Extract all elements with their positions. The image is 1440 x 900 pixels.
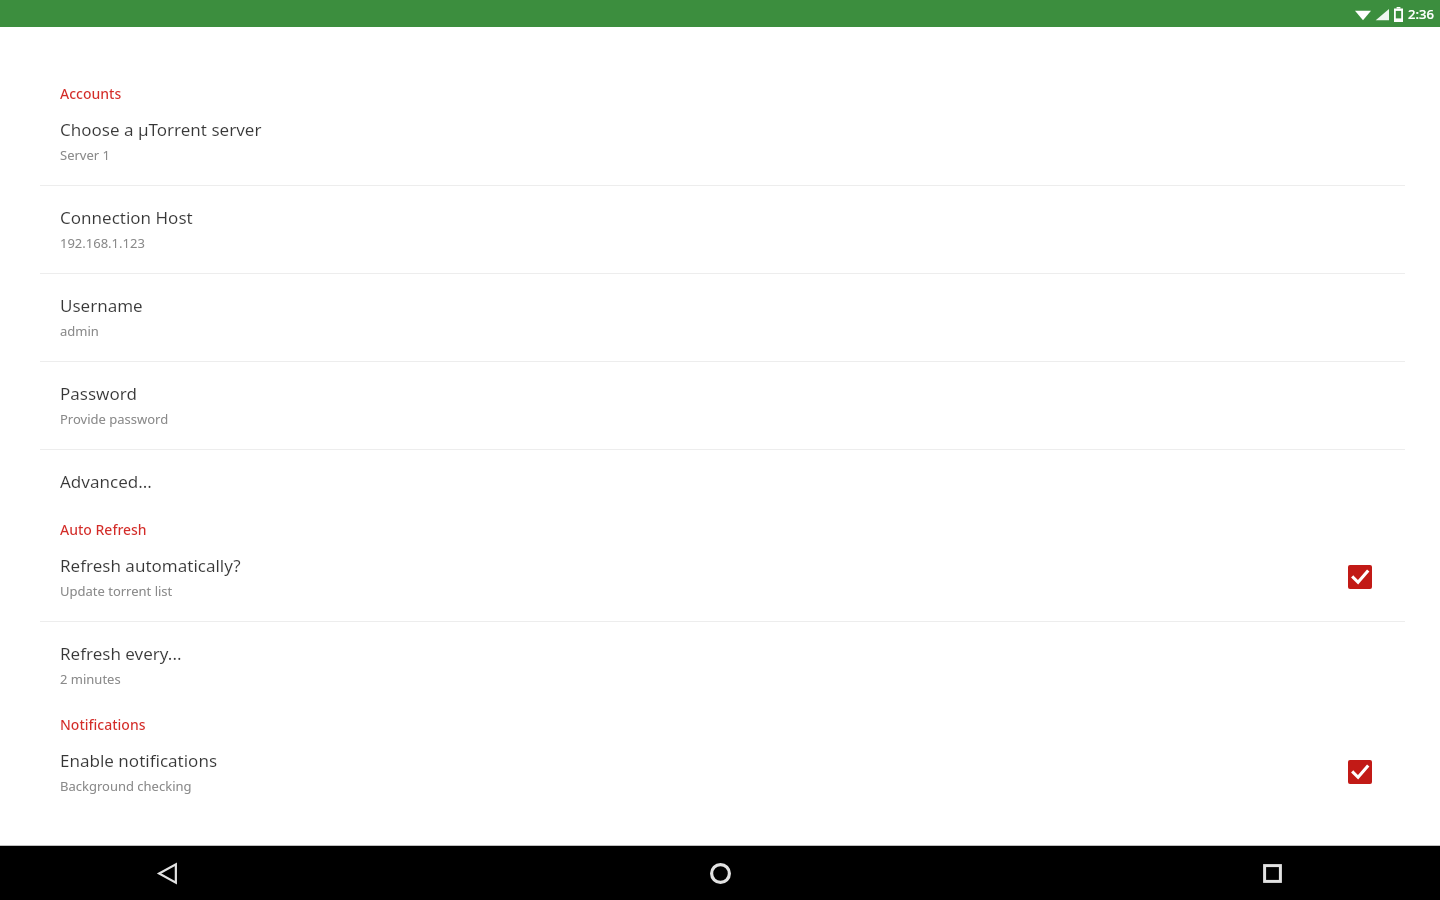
- button[interactable]: Refresh automatically?: [0, 554, 1440, 600]
- button[interactable]: Toggle setting: [1348, 565, 1372, 589]
- button[interactable]: Advanced...: [0, 470, 1440, 493]
- staticText: Password: [60, 382, 137, 405]
- staticText: Update torrent list: [60, 582, 173, 600]
- staticText: Username: [60, 294, 143, 317]
- staticText: Notifications: [60, 715, 146, 734]
- staticText: Accounts: [60, 84, 122, 103]
- button[interactable]: Back: [0, 846, 480, 900]
- staticText: Refresh every...: [60, 642, 182, 665]
- staticText: Provide password: [60, 410, 169, 428]
- staticText: Choose a µTorrent server: [60, 118, 262, 141]
- staticText: Background checking: [60, 777, 192, 795]
- button[interactable]: Choose a µTorrent server: [0, 118, 1440, 164]
- button[interactable]: Enable notifications: [0, 749, 1440, 795]
- staticText: Advanced...: [60, 470, 152, 493]
- staticText: Refresh automatically?: [60, 554, 241, 577]
- staticText: admin: [60, 322, 99, 340]
- button[interactable]: Recents: [960, 846, 1440, 900]
- button[interactable]: Username: [0, 294, 1440, 340]
- staticText: Auto Refresh: [60, 520, 147, 539]
- button[interactable]: Home: [480, 846, 960, 900]
- button[interactable]: Refresh every...: [0, 642, 1440, 688]
- staticText: Connection Host: [60, 206, 193, 229]
- staticText: 192.168.1.123: [60, 234, 145, 252]
- staticText: Server 1: [60, 146, 110, 164]
- button[interactable]: Password: [0, 382, 1440, 428]
- staticText: 2:36: [1408, 5, 1434, 23]
- button[interactable]: Connection Host: [0, 206, 1440, 252]
- staticText: 2 minutes: [60, 670, 121, 688]
- staticText: Enable notifications: [60, 749, 218, 772]
- button[interactable]: Toggle setting: [1348, 760, 1372, 784]
